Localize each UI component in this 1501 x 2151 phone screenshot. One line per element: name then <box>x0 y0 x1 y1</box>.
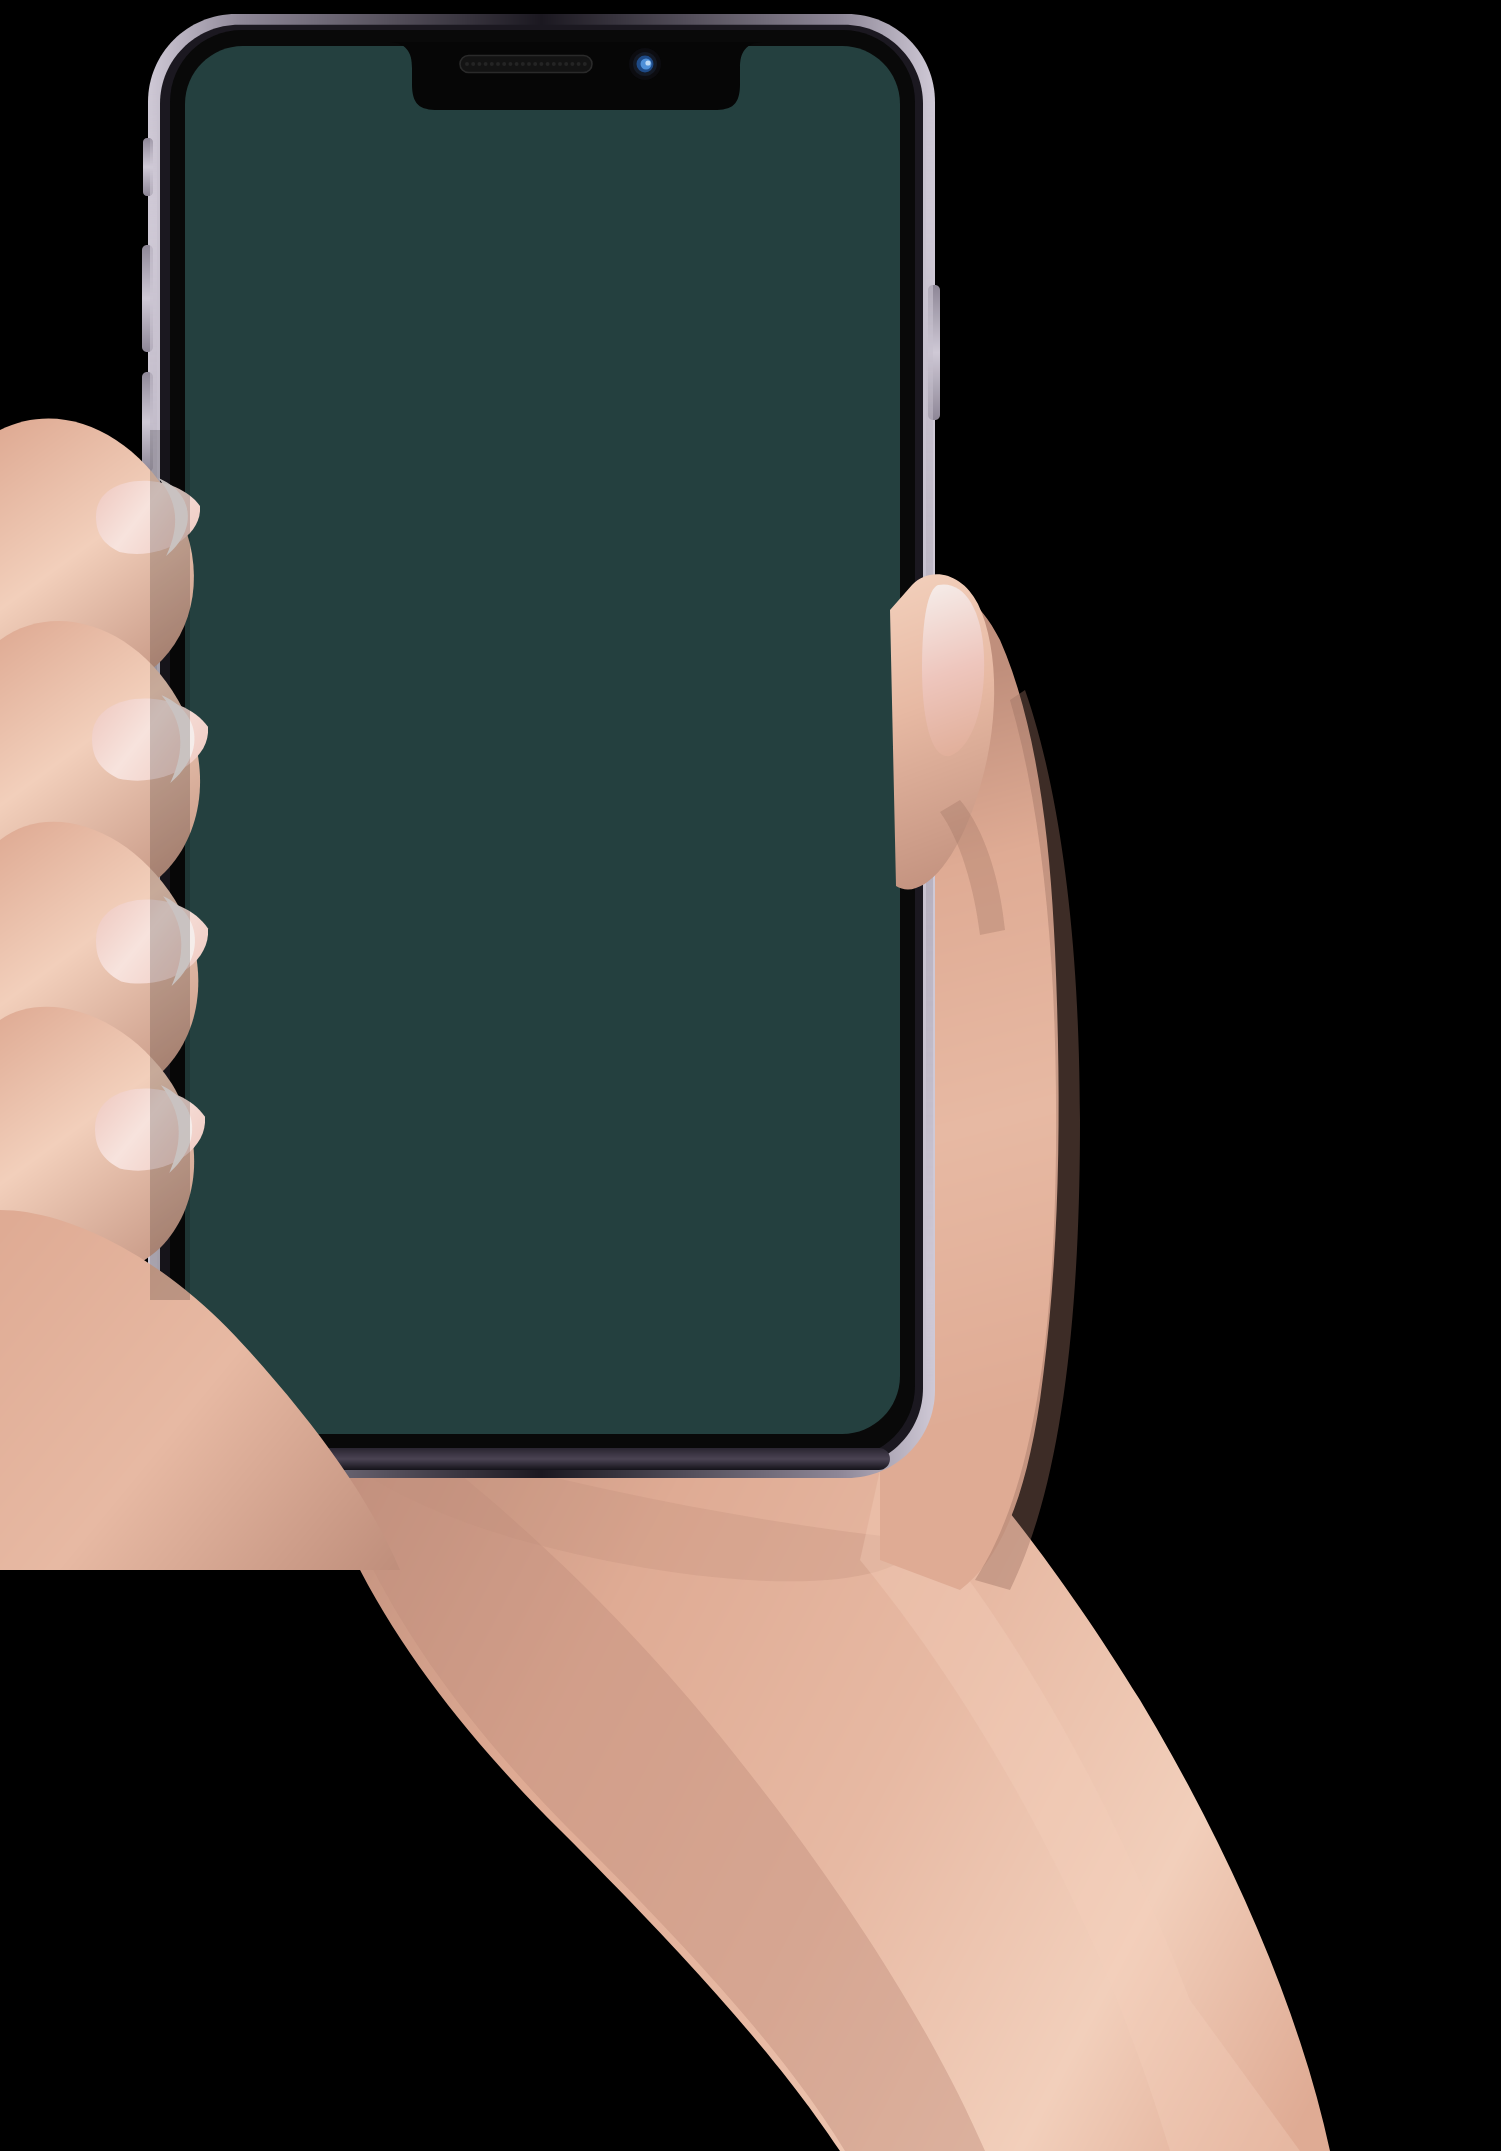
button[interactable]: Hand holding a smartphone <box>0 0 1501 2151</box>
